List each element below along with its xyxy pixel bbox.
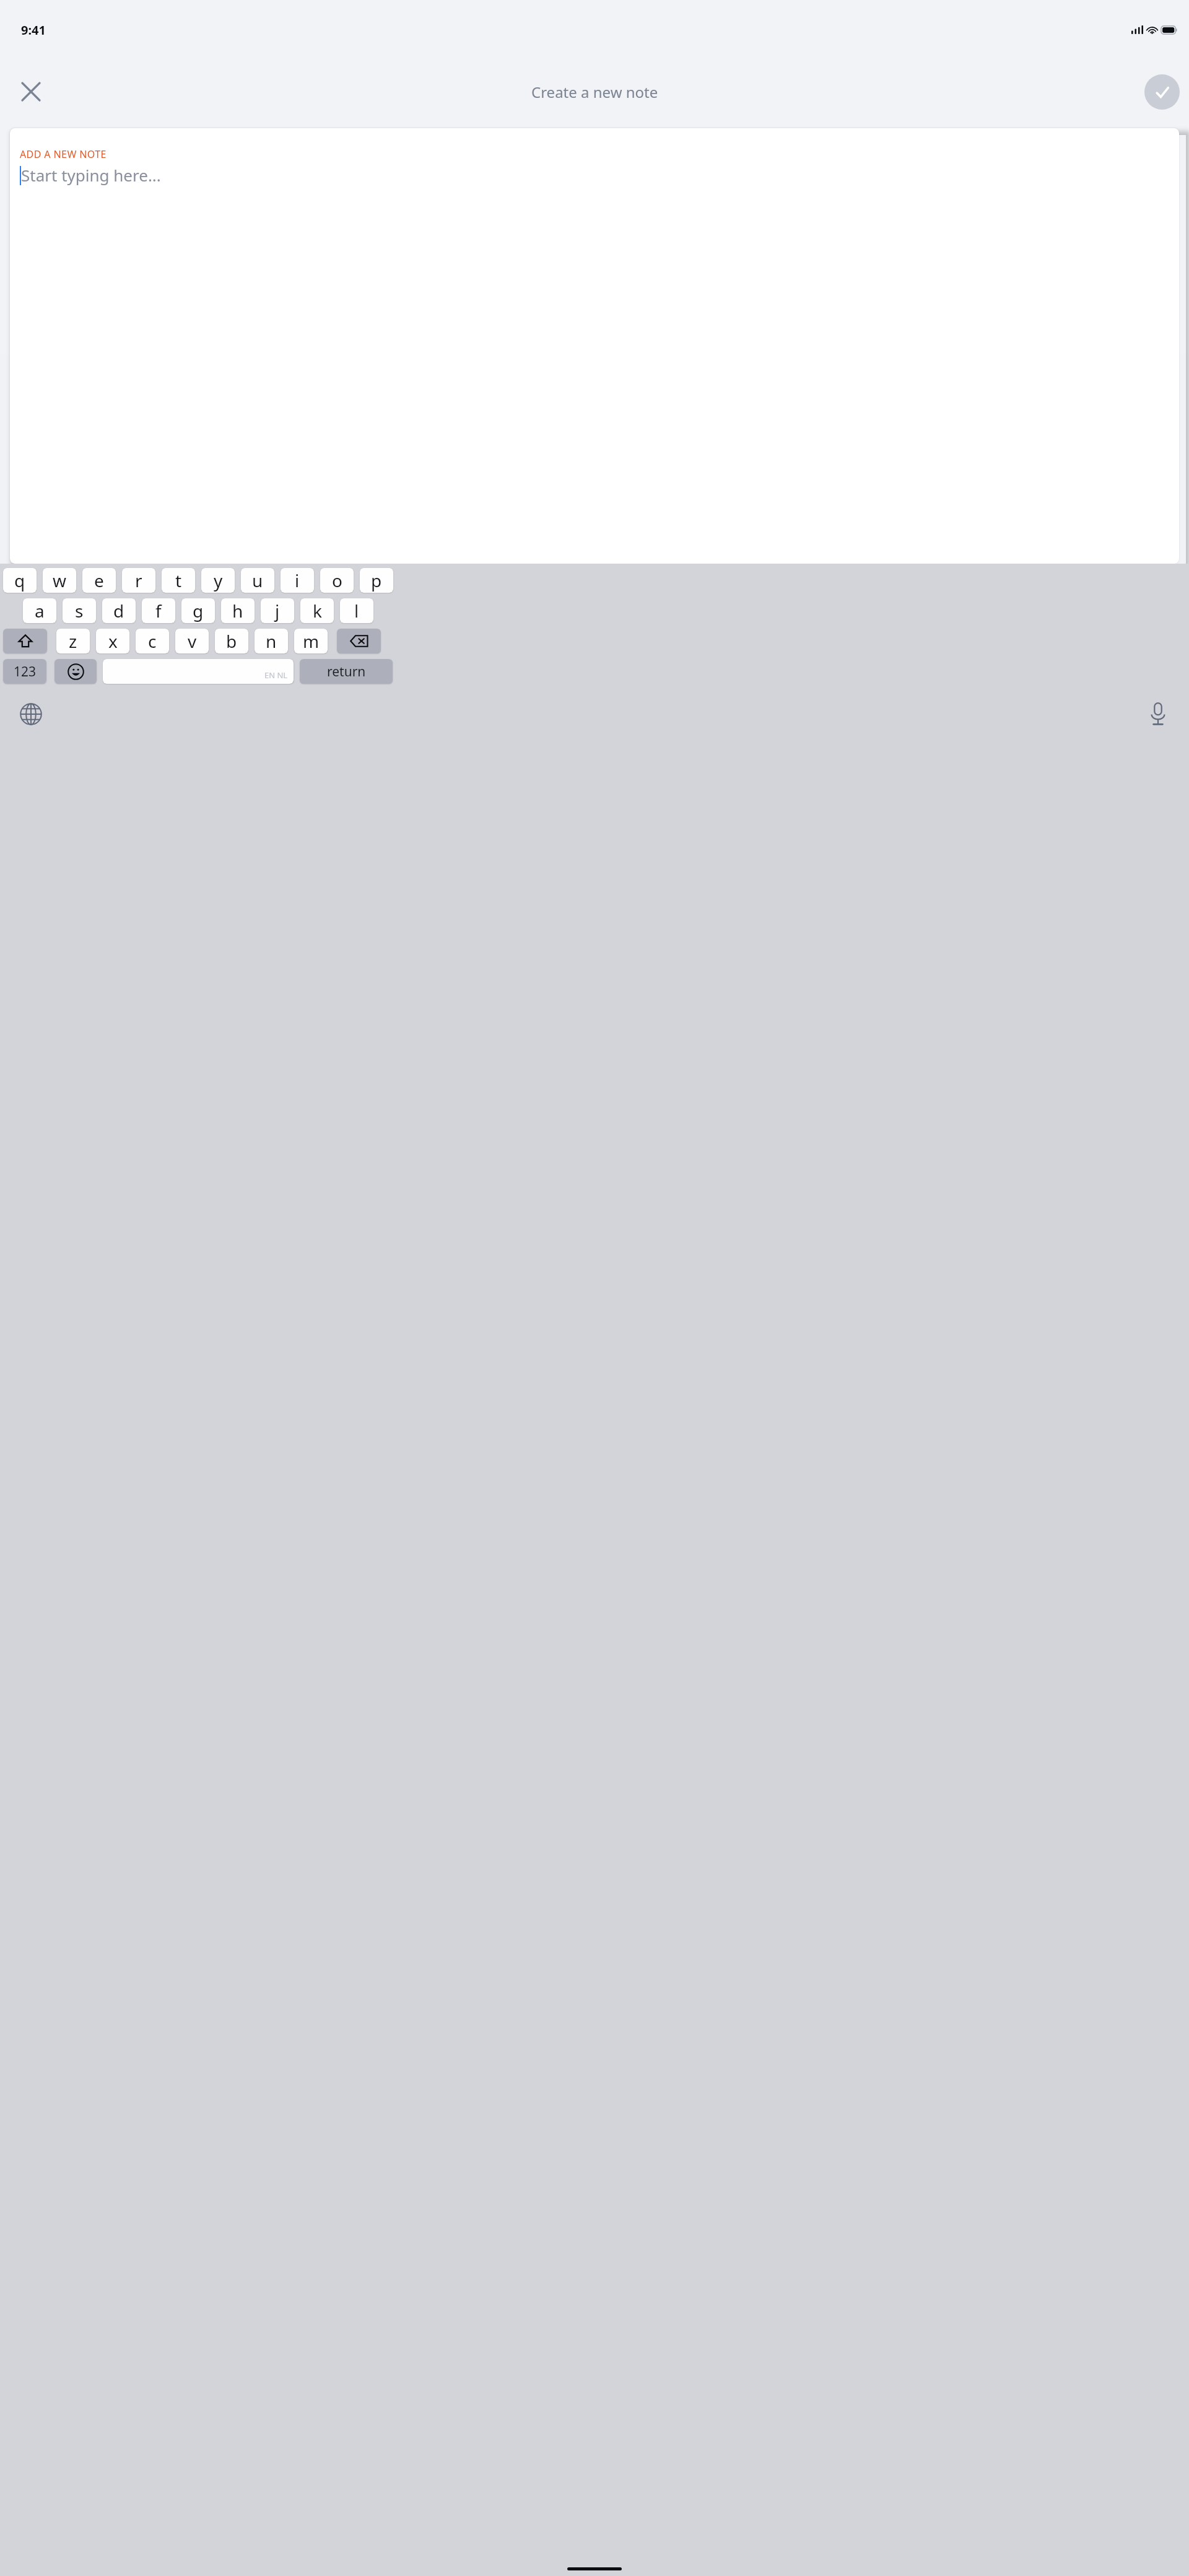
button[interactable]: i (281, 568, 314, 593)
button[interactable]: n (255, 629, 288, 653)
button[interactable]: v (175, 629, 209, 653)
staticText: x (108, 629, 118, 653)
staticText: k (313, 599, 322, 622)
staticText: w (53, 569, 67, 592)
staticText: v (188, 629, 197, 653)
button[interactable]: j (261, 598, 294, 623)
staticText: Start typing here... (21, 164, 161, 186)
staticText: s (75, 599, 84, 622)
staticText: j (275, 599, 280, 622)
button[interactable]: s (63, 598, 96, 623)
staticText: h (232, 599, 243, 622)
button[interactable]: Voice input (1141, 697, 1175, 731)
button[interactable]: Switch keyboard (14, 697, 48, 731)
button[interactable]: h (221, 598, 255, 623)
button[interactable]: w (43, 568, 76, 593)
button[interactable]: o (320, 568, 354, 593)
staticText: 9:41 (21, 22, 46, 38)
staticText: EN NL (264, 670, 288, 681)
staticText: b (226, 629, 237, 653)
staticText: r (135, 569, 142, 592)
staticText: f (155, 599, 162, 622)
button[interactable]: Shift (3, 629, 47, 653)
staticText: q (14, 569, 25, 592)
staticText: Create a new note (531, 82, 658, 102)
staticText: e (94, 569, 104, 592)
button[interactable]: Backspace (337, 629, 381, 653)
staticText: 123 (14, 663, 37, 681)
button[interactable]: Close (15, 76, 47, 108)
staticText: o (332, 569, 342, 592)
staticText: t (175, 569, 182, 592)
button[interactable]: g (181, 598, 215, 623)
button[interactable]: r (122, 568, 155, 593)
button[interactable]: ADD A NEW NOTE (10, 128, 1179, 564)
staticText: d (113, 599, 124, 622)
staticText: m (303, 629, 320, 653)
staticText: u (252, 569, 263, 592)
staticText: ADD A NEW NOTE (20, 147, 107, 161)
button[interactable]: Emoji (54, 659, 97, 684)
staticText: l (354, 599, 359, 622)
button[interactable]: q (3, 568, 37, 593)
staticText: z (69, 629, 77, 653)
button[interactable]: c (136, 629, 169, 653)
staticText: n (266, 629, 277, 653)
button[interactable]: u (241, 568, 274, 593)
staticText: a (35, 599, 45, 622)
button[interactable]: return (300, 659, 393, 684)
button[interactable]: l (340, 598, 373, 623)
staticText: c (148, 629, 157, 653)
staticText: return (327, 663, 366, 681)
button[interactable]: t (162, 568, 195, 593)
button[interactable]: Save note (1144, 74, 1180, 110)
button[interactable]: 123 (3, 659, 46, 684)
button[interactable]: Space (103, 659, 294, 684)
staticText: i (295, 569, 300, 592)
button[interactable]: y (201, 568, 235, 593)
button[interactable]: m (294, 629, 328, 653)
button[interactable]: f (142, 598, 175, 623)
button[interactable]: x (96, 629, 129, 653)
staticText: p (371, 569, 382, 592)
button[interactable]: k (300, 598, 334, 623)
staticText: g (193, 599, 204, 622)
button[interactable]: z (56, 629, 90, 653)
button[interactable]: e (82, 568, 116, 593)
button[interactable]: d (102, 598, 136, 623)
button[interactable]: a (23, 598, 56, 623)
button[interactable]: p (360, 568, 393, 593)
button[interactable]: b (215, 629, 248, 653)
staticText: y (214, 569, 223, 592)
